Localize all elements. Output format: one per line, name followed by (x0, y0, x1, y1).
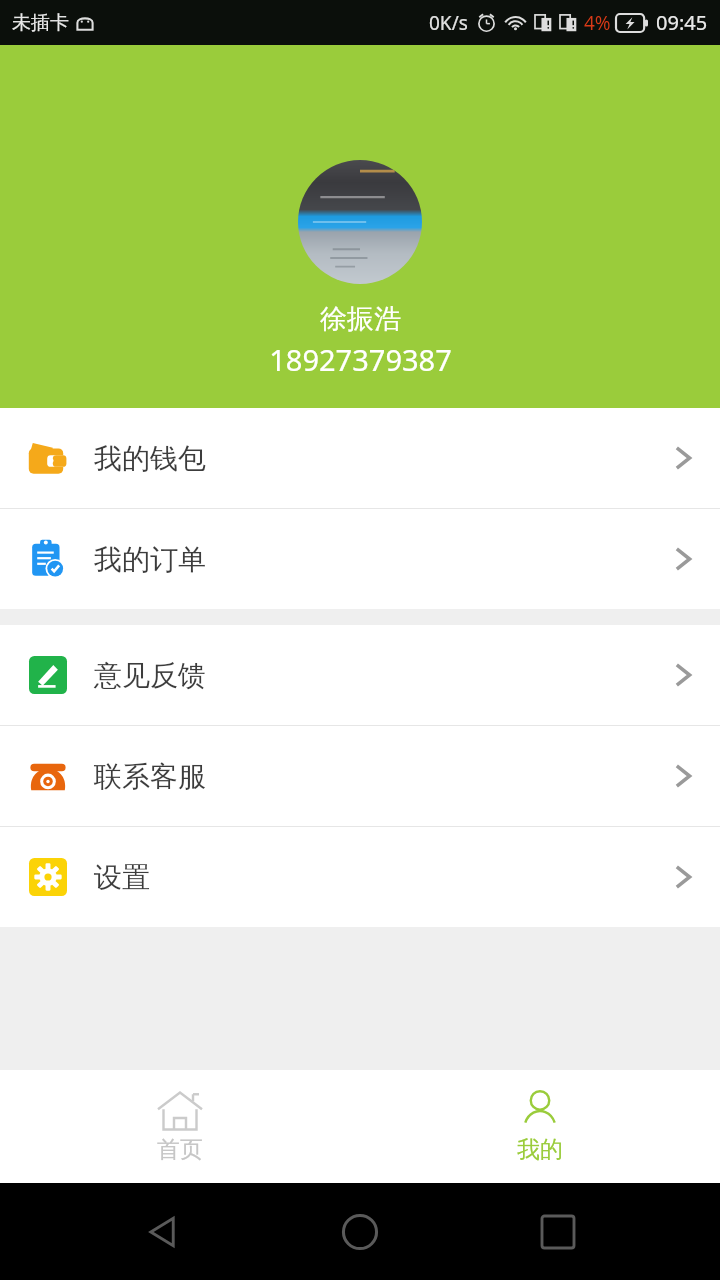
staticText: 未插卡 (12, 11, 69, 35)
button[interactable]: 设置 (0, 827, 720, 927)
button[interactable]: 我的 (360, 1070, 720, 1183)
button[interactable]: Recent apps (523, 1197, 593, 1267)
button[interactable]: 意见反馈 (0, 625, 720, 725)
button[interactable]: 我的订单 (0, 509, 720, 609)
staticText: 意见反馈 (94, 658, 206, 693)
button[interactable]: 联系客服 (0, 726, 720, 826)
button[interactable]: Home (325, 1197, 395, 1267)
staticText: 徐振浩 (320, 302, 401, 336)
staticText: 09:45 (656, 9, 708, 36)
staticText: 18927379387 (269, 340, 452, 379)
staticText: 我的订单 (94, 542, 206, 577)
staticText: 4% (584, 10, 611, 36)
staticText: 0K/s (429, 10, 468, 36)
staticText: 联系客服 (94, 759, 206, 794)
button[interactable]: Back (128, 1197, 198, 1267)
staticText: 我的钱包 (94, 441, 206, 476)
button[interactable]: Profile photo (298, 160, 422, 284)
staticText: 我的 (517, 1135, 563, 1164)
staticText: 设置 (94, 860, 150, 895)
button[interactable]: 我的钱包 (0, 408, 720, 508)
button[interactable]: 首页 (0, 1070, 360, 1183)
staticText: 首页 (157, 1135, 203, 1164)
